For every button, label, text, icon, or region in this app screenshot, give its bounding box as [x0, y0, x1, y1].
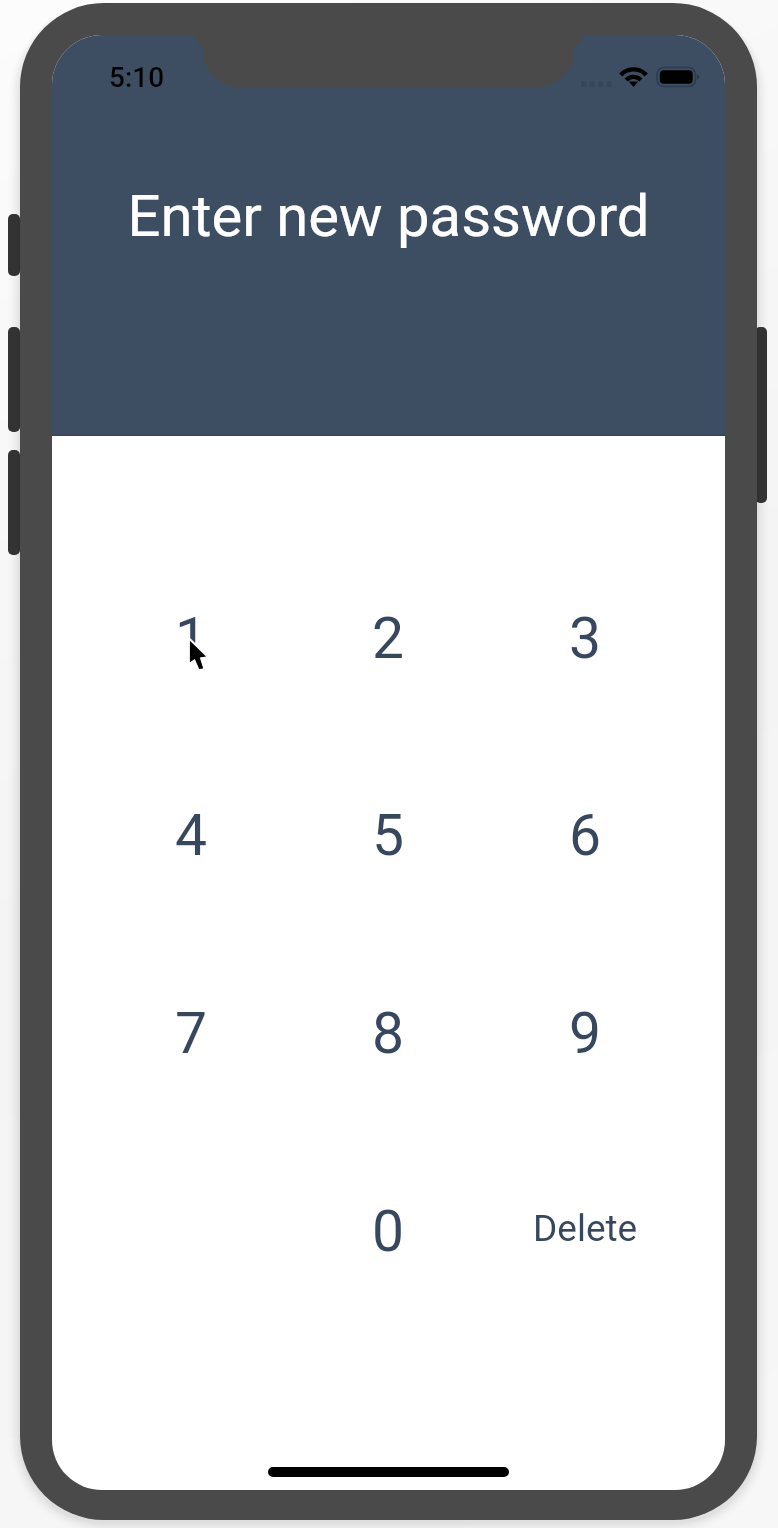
button[interactable]: 4: [93, 737, 290, 934]
staticText: 7: [175, 1000, 208, 1067]
button[interactable]: 5: [290, 737, 487, 934]
staticText: Delete: [533, 1207, 638, 1250]
staticText: Enter new password: [52, 182, 725, 250]
button[interactable]: 6: [487, 737, 684, 934]
button[interactable]: 3: [487, 539, 684, 737]
staticText: 0: [372, 1198, 405, 1265]
button[interactable]: Delete: [487, 1132, 684, 1330]
button[interactable]: 1: [93, 539, 290, 737]
staticText: 3: [569, 605, 602, 672]
staticText: 8: [372, 1000, 405, 1067]
button[interactable]: 0: [290, 1132, 487, 1330]
staticText: 6: [569, 802, 602, 869]
button[interactable]: 7: [93, 934, 290, 1132]
staticText: 4: [175, 802, 208, 869]
staticText: 1: [175, 605, 208, 672]
staticText: 5:10: [109, 61, 165, 94]
staticText: 5: [372, 802, 405, 869]
other: Battery full: [657, 67, 699, 87]
button[interactable]: 9: [487, 934, 684, 1132]
button[interactable]: 8: [290, 934, 487, 1132]
staticText: 9: [569, 1000, 602, 1067]
staticText: 2: [372, 605, 405, 672]
other: Wi-Fi: [619, 67, 648, 87]
other: Cellular signal: [581, 67, 611, 87]
button[interactable]: 2: [290, 539, 487, 737]
